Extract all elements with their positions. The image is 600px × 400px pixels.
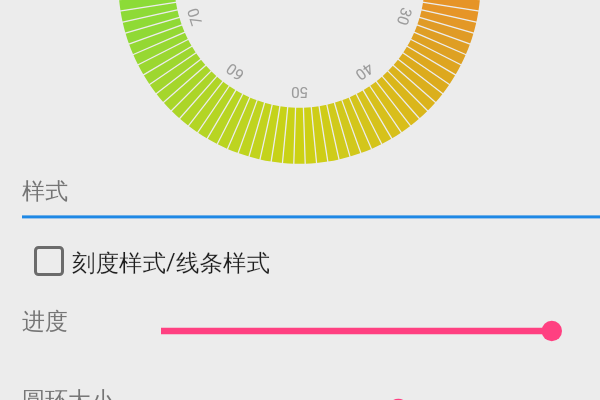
button[interactable]: 圆环大小 (0, 378, 600, 400)
button[interactable] (0, 170, 600, 220)
button[interactable] (22, 238, 282, 284)
other: Speed gauge (0, 0, 600, 400)
button[interactable]: 进度 (0, 300, 600, 362)
